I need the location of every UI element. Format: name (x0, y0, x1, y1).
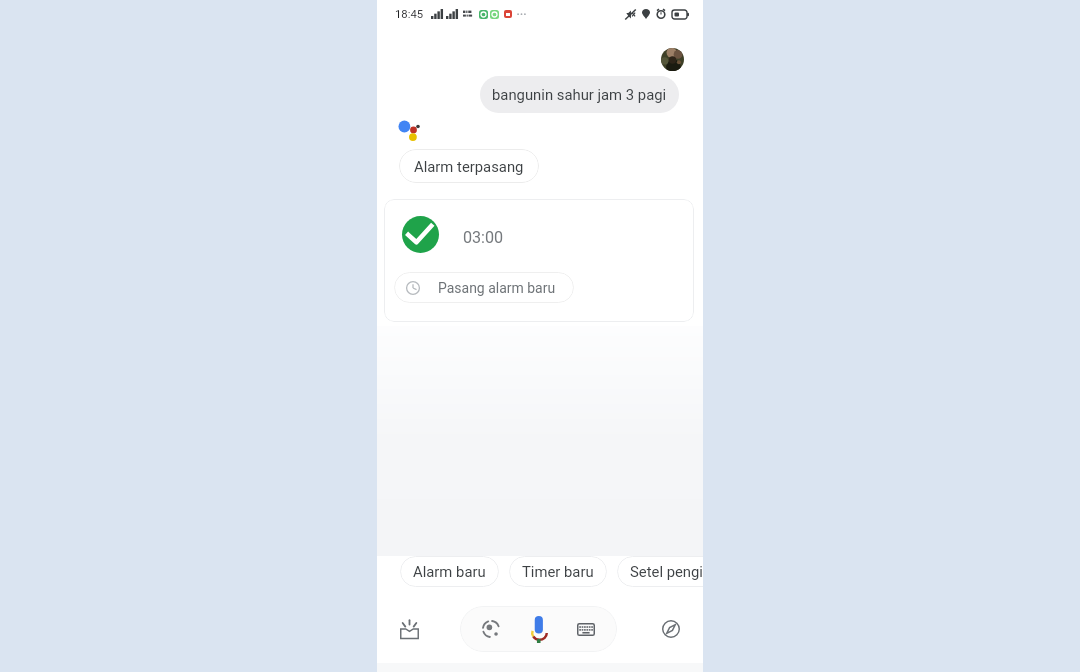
button[interactable]: Timer baru (509, 556, 607, 587)
button[interactable]: Keyboard (569, 612, 603, 646)
staticText: Setel pengingat (630, 563, 703, 580)
staticText: 03:00 (463, 228, 504, 247)
button[interactable]: Google Lens (474, 612, 508, 646)
staticText: Pasang alarm baru (438, 280, 556, 296)
staticText: 18:45 (395, 8, 424, 21)
staticText: Alarm baru (413, 563, 486, 580)
button[interactable]: Setel pengingat (617, 556, 703, 587)
button[interactable]: 03:00 (384, 199, 694, 322)
button[interactable]: Pasang alarm baru (394, 272, 574, 303)
button[interactable]: Alarm terpasang (399, 149, 539, 183)
button[interactable]: Voice search (522, 612, 556, 646)
button[interactable]: Snapshot (391, 611, 427, 647)
button[interactable]: Profile (661, 48, 684, 71)
staticText: Alarm terpasang (414, 158, 524, 175)
staticText: bangunin sahur jam 3 pagi (492, 86, 667, 103)
staticText: Timer baru (522, 563, 594, 580)
button[interactable]: bangunin sahur jam 3 pagi (480, 76, 679, 113)
button[interactable]: Explore (653, 611, 689, 647)
button[interactable]: Alarm baru (400, 556, 499, 587)
